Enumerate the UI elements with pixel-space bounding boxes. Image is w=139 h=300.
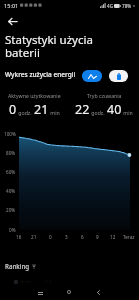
staticText: 6: [81, 234, 84, 240]
staticText: 0%: [9, 227, 16, 233]
button[interactable]: Recent apps: [29, 287, 51, 299]
staticText: min: [49, 109, 60, 116]
staticText: Aktywne użytkowanie: [8, 92, 61, 99]
staticText: 41%: [44, 279, 53, 285]
staticText: Ekran: [20, 279, 32, 285]
button[interactable]: Back: [3, 13, 22, 30]
staticText: 60%: [6, 169, 16, 175]
staticText: 0: [9, 101, 17, 118]
staticText: 100%: [4, 131, 16, 137]
staticText: godz.: [17, 109, 34, 116]
button[interactable]: Back: [87, 286, 109, 298]
button[interactable]: Battery level: [109, 70, 128, 82]
staticText: 4G: [107, 3, 113, 9]
staticText: Teraz: [123, 234, 135, 240]
staticText: Tryb czuwania: [87, 92, 122, 99]
button[interactable]: Ranking: [5, 260, 36, 272]
staticText: 40: [107, 101, 122, 118]
staticText: 21: [34, 101, 49, 118]
staticText: Wykres zużycia energii: [5, 70, 76, 79]
button[interactable]: Ekran: [0, 277, 139, 286]
staticText: 22: [75, 101, 90, 118]
button[interactable]: Battery usage chart: [82, 70, 102, 82]
staticText: Ranking: [5, 262, 30, 270]
staticText: 80%: [6, 150, 16, 156]
staticText: 3: [65, 234, 68, 240]
staticText: godz.: [90, 109, 107, 116]
staticText: 9: [96, 234, 99, 240]
staticText: 20%: [6, 207, 16, 213]
staticText: 0: [49, 234, 52, 240]
staticText: Statystyki użycia baterii: [5, 32, 105, 61]
staticText: 40%: [6, 188, 16, 194]
staticText: 16: [16, 234, 22, 240]
staticText: 78%: [122, 3, 132, 9]
staticText: 21: [31, 234, 37, 240]
staticText: min: [122, 109, 133, 116]
button[interactable]: Home: [58, 286, 80, 298]
staticText: 15:01: [4, 2, 19, 10]
staticText: 12: [110, 234, 116, 240]
